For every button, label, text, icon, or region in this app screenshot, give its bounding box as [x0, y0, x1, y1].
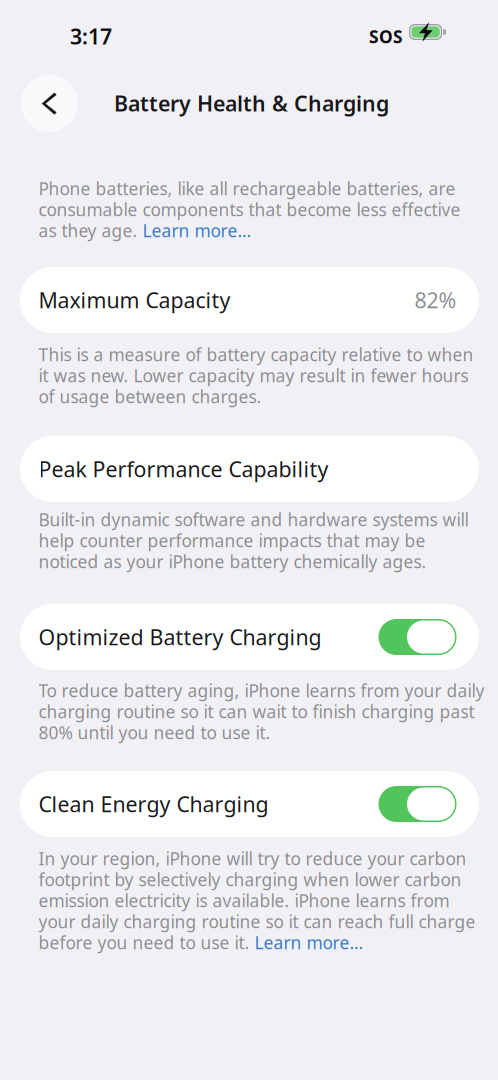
- staticText: help counter performance impacts that ma…: [38, 529, 425, 552]
- staticText: Learn more…: [142, 219, 251, 242]
- staticText: before you need to use it.: [38, 931, 254, 954]
- staticText: Clean Energy Charging: [38, 790, 268, 818]
- button[interactable]: Clean Energy Charging: [20, 771, 479, 837]
- staticText: Battery Health & Charging: [114, 89, 389, 117]
- staticText: 80% until you need to use it.: [38, 721, 270, 744]
- staticText: consumable components that become less e…: [38, 198, 460, 221]
- button[interactable]: Toggle: [378, 619, 456, 655]
- staticText: footprint by selectively charging when l…: [38, 868, 461, 891]
- staticText: 3:17: [70, 22, 112, 50]
- staticText: Phone batteries, like all rechargeable b…: [38, 177, 455, 200]
- staticText: In your region, iPhone will try to reduc…: [38, 847, 466, 870]
- staticText: Maximum Capacity: [38, 286, 230, 314]
- button[interactable]: Maximum Capacity: [20, 267, 479, 333]
- button[interactable]: Learn more…: [254, 931, 363, 954]
- staticText: as they age.: [38, 219, 142, 242]
- button[interactable]: Toggle: [378, 786, 456, 822]
- staticText: it was new. Lower capacity may result in…: [38, 364, 468, 387]
- staticText: 82%: [414, 286, 456, 314]
- staticText: noticed as your iPhone battery chemicall…: [38, 550, 426, 573]
- staticText: Peak Performance Capability: [38, 455, 328, 483]
- button[interactable]: Peak Performance Capability: [20, 436, 479, 502]
- staticText: emission electricity is available. iPhon…: [38, 889, 449, 912]
- staticText: of usage between charges.: [38, 385, 261, 408]
- staticText: This is a measure of battery capacity re…: [38, 343, 473, 366]
- staticText: Optimized Battery Charging: [38, 623, 321, 651]
- button[interactable]: Learn more…: [142, 219, 251, 242]
- staticText: charging routine so it can wait to finis…: [38, 700, 474, 723]
- staticText: To reduce battery aging, iPhone learns f…: [38, 679, 484, 702]
- staticText: Built-in dynamic software and hardware s…: [38, 508, 468, 531]
- staticText: SOS: [369, 25, 403, 48]
- button[interactable]: Back: [21, 75, 78, 132]
- button[interactable]: Optimized Battery Charging: [20, 604, 479, 670]
- staticText: Learn more…: [254, 931, 363, 954]
- staticText: your daily charging routine so it can re…: [38, 910, 475, 933]
